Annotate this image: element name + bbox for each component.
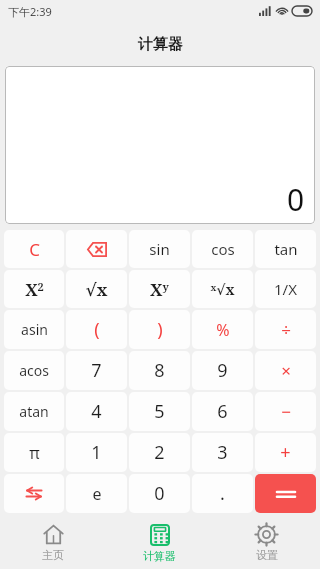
staticText: % xyxy=(216,319,230,341)
button[interactable]: π xyxy=(4,433,64,472)
button[interactable]: 9 xyxy=(192,351,253,390)
staticText: cos xyxy=(211,239,235,259)
button[interactable]: atan xyxy=(4,392,64,431)
staticText: 计算器 xyxy=(138,35,183,54)
staticText: − xyxy=(281,400,291,423)
staticText: acos xyxy=(19,361,49,380)
button[interactable]: 设置 xyxy=(213,517,320,569)
button[interactable]: e xyxy=(66,474,127,513)
button[interactable]: C xyxy=(4,230,64,268)
button[interactable]: Backspace xyxy=(66,230,127,268)
button[interactable]: 0 xyxy=(129,474,190,513)
staticText: tan xyxy=(274,239,298,259)
button[interactable]: asin xyxy=(4,310,64,349)
staticText: 主页 xyxy=(42,548,64,562)
staticText: ( xyxy=(94,317,100,342)
button[interactable]: X2 xyxy=(4,270,64,308)
staticText: 7 xyxy=(91,358,102,383)
staticText: 1 xyxy=(91,440,102,465)
staticText: 9 xyxy=(217,358,228,383)
button[interactable]: × xyxy=(255,351,316,390)
button[interactable]: Xy xyxy=(129,270,190,308)
button[interactable]: ÷ xyxy=(255,310,316,349)
button[interactable]: 5 xyxy=(129,392,190,431)
button[interactable]: 8 xyxy=(129,351,190,390)
staticText: 下午2:39 xyxy=(8,4,52,19)
staticText: 6 xyxy=(217,399,228,424)
staticText: ) xyxy=(157,317,163,342)
button[interactable]: 1 xyxy=(66,433,127,472)
button[interactable]: acos xyxy=(4,351,64,390)
button[interactable]: 主页 xyxy=(0,517,106,569)
button[interactable]: Swap xyxy=(4,474,64,513)
staticText: ÷ xyxy=(281,318,291,341)
staticText: 0 xyxy=(287,179,305,220)
staticText: Xy xyxy=(150,278,169,301)
button[interactable] xyxy=(255,474,316,513)
button[interactable]: 计算器 xyxy=(106,517,213,569)
staticText: . xyxy=(220,481,225,506)
staticText: 计算器 xyxy=(143,549,176,563)
staticText: 0 xyxy=(154,481,165,506)
staticText: 设置 xyxy=(256,548,278,562)
staticText: 4 xyxy=(91,399,102,424)
staticText: atan xyxy=(19,402,49,421)
button[interactable]: 6 xyxy=(192,392,253,431)
staticText: 1/X xyxy=(274,279,297,299)
staticText: asin xyxy=(21,320,48,339)
button[interactable]: 7 xyxy=(66,351,127,390)
staticText: e xyxy=(92,483,102,505)
button[interactable]: √x xyxy=(66,270,127,308)
button[interactable]: ˣ√x xyxy=(192,270,253,308)
button[interactable]: 3 xyxy=(192,433,253,472)
button[interactable]: 2 xyxy=(129,433,190,472)
button[interactable]: 4 xyxy=(66,392,127,431)
button[interactable]: % xyxy=(192,310,253,349)
staticText: 2 xyxy=(154,440,165,465)
staticText: 5 xyxy=(154,399,165,424)
staticText: C xyxy=(29,238,40,261)
staticText: 8 xyxy=(154,358,165,383)
button[interactable]: ( xyxy=(66,310,127,349)
staticText: √x xyxy=(85,278,108,301)
button[interactable]: tan xyxy=(255,230,316,268)
button[interactable]: 1/X xyxy=(255,270,316,308)
staticText: X2 xyxy=(25,278,44,301)
button[interactable]: cos xyxy=(192,230,253,268)
button[interactable]: ) xyxy=(129,310,190,349)
staticText: × xyxy=(281,359,291,382)
button[interactable]: − xyxy=(255,392,316,431)
staticText: sin xyxy=(149,239,170,259)
staticText: + xyxy=(280,440,291,465)
button[interactable]: sin xyxy=(129,230,190,268)
staticText: ˣ√x xyxy=(210,280,235,299)
staticText: π xyxy=(29,442,40,464)
staticText: 3 xyxy=(217,440,228,465)
button[interactable]: + xyxy=(255,433,316,472)
button[interactable]: . xyxy=(192,474,253,513)
